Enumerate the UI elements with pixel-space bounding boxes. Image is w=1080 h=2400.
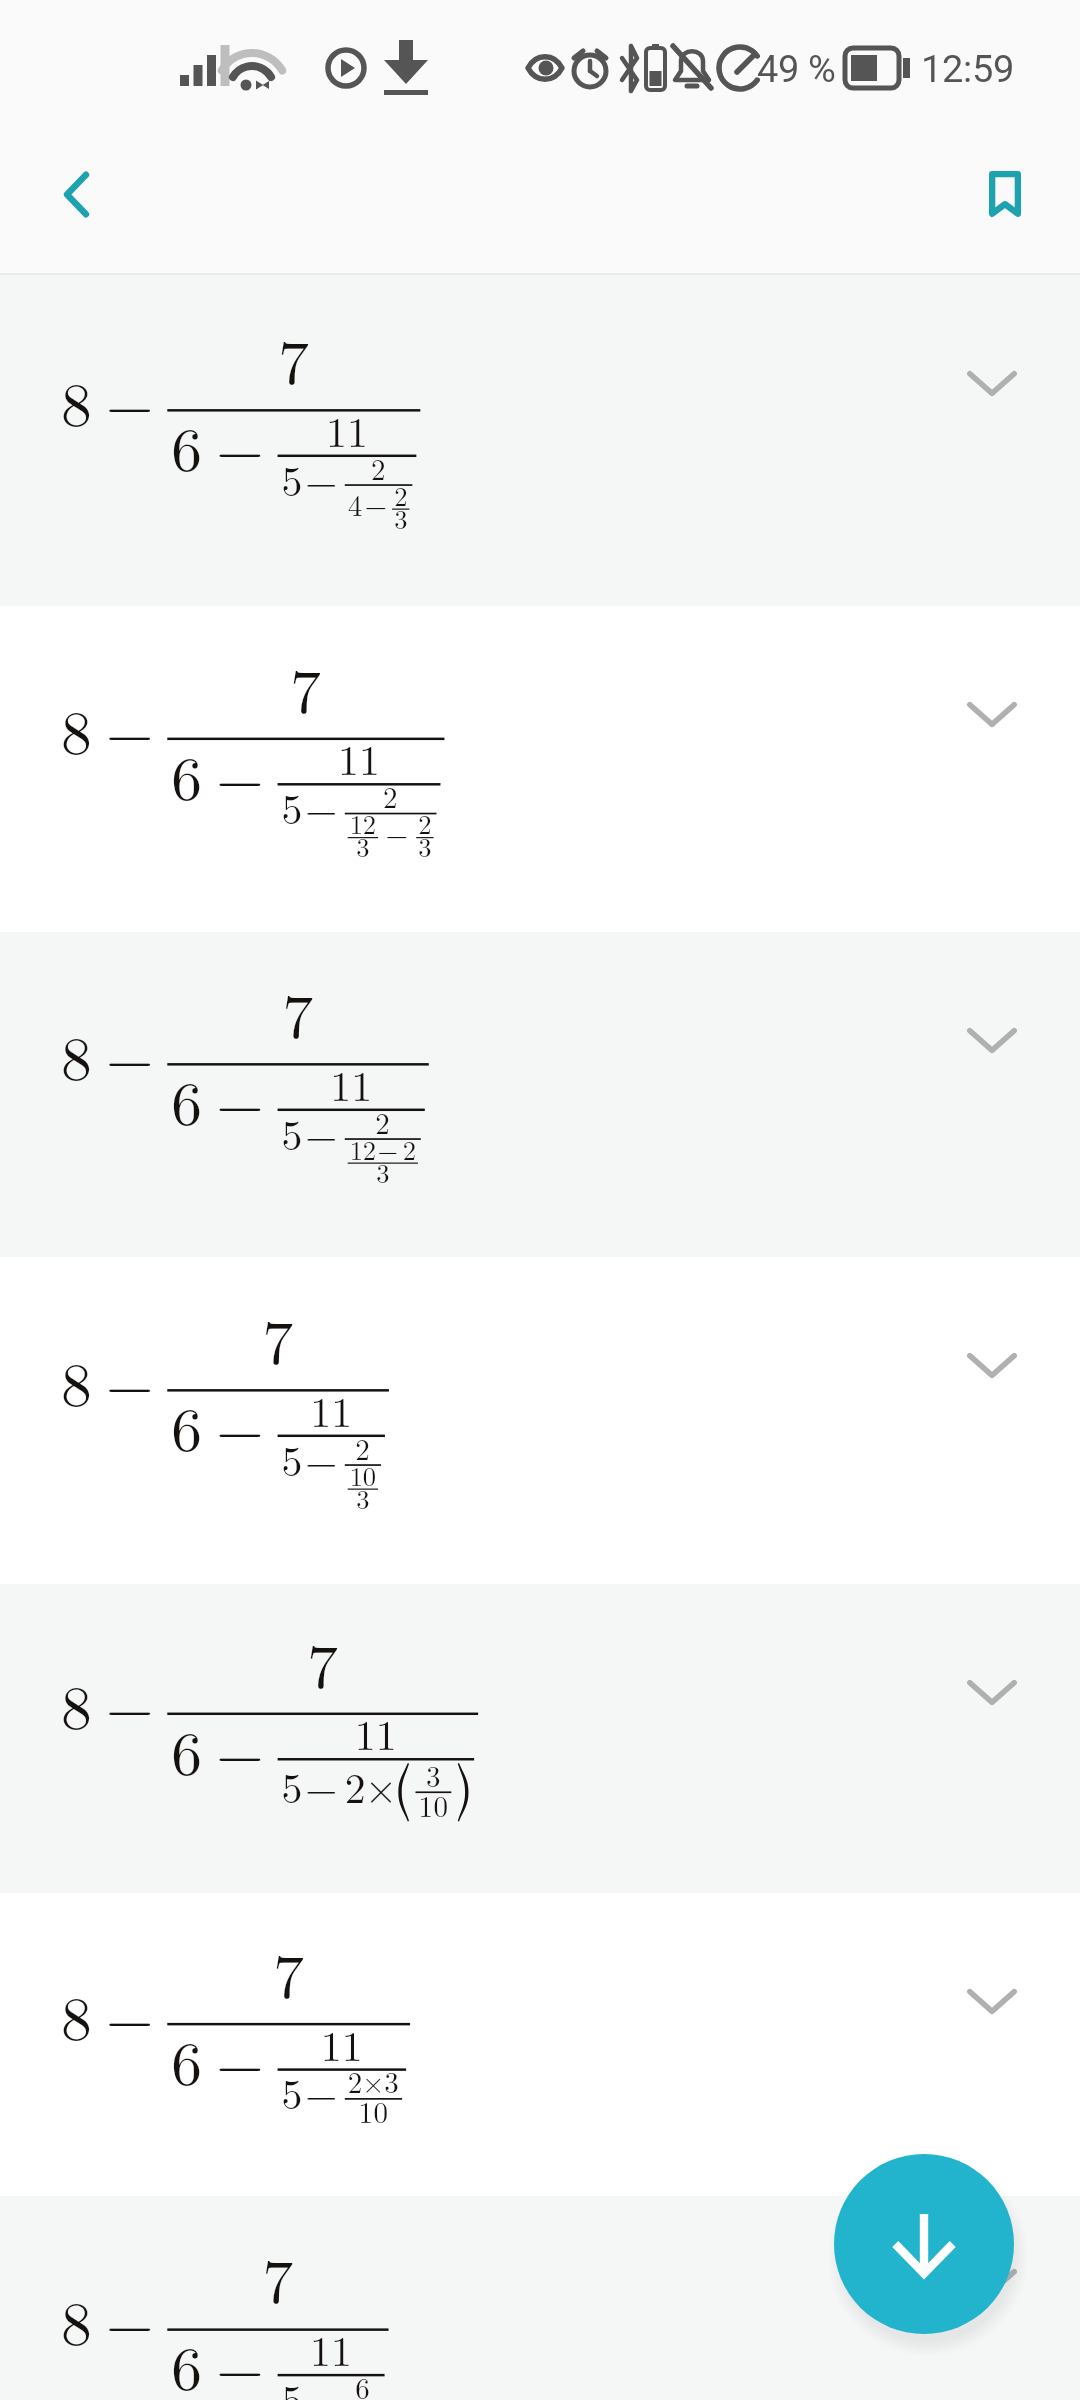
button[interactable]: Expand step: [963, 2252, 1021, 2310]
button[interactable]: Expand step: [0, 1893, 1080, 2196]
button[interactable]: Expand step: [963, 1663, 1021, 1721]
button[interactable]: Expand step: [0, 275, 1080, 606]
button[interactable]: Expand step: [0, 1584, 1080, 1893]
button[interactable]: Expand step: [963, 1972, 1021, 2030]
button[interactable]: Scroll to bottom: [834, 2154, 1014, 2334]
button[interactable]: Expand step: [0, 1257, 1080, 1584]
button[interactable]: Expand step: [963, 1336, 1021, 1394]
button[interactable]: Bookmark: [957, 145, 1053, 243]
button[interactable]: Expand step: [0, 2196, 1080, 2400]
button[interactable]: Expand step: [963, 354, 1021, 412]
button[interactable]: Expand step: [963, 1011, 1021, 1069]
button[interactable]: Expand step: [0, 932, 1080, 1257]
button[interactable]: Expand step: [963, 685, 1021, 743]
button[interactable]: Expand step: [0, 606, 1080, 932]
button[interactable]: Back: [26, 145, 126, 243]
